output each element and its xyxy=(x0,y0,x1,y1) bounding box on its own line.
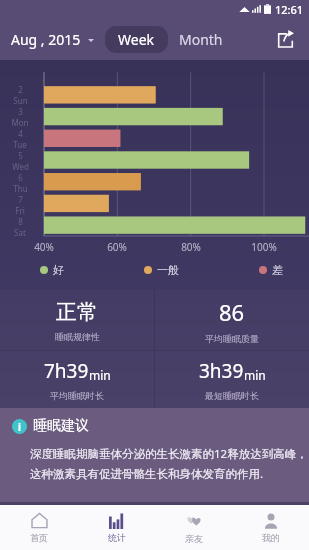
staticText: 最短睡眠时长 xyxy=(205,390,259,401)
button[interactable]: 我的 xyxy=(232,505,309,550)
staticText: 8 xyxy=(18,216,23,227)
staticText: 亲友 xyxy=(185,533,203,544)
staticText: 5 xyxy=(18,150,23,161)
button[interactable]: 正常 xyxy=(0,290,154,350)
button[interactable]: Aug , 2015 xyxy=(11,25,94,54)
staticText: 6 xyxy=(18,172,23,183)
button[interactable]: 首页 xyxy=(0,505,78,550)
button[interactable]: 7h39 xyxy=(0,351,154,408)
staticText: 平均睡眠时长 xyxy=(50,390,104,401)
button[interactable]: 一般 xyxy=(144,263,179,277)
button[interactable]: Week xyxy=(105,26,168,53)
staticText: Week xyxy=(118,30,155,49)
staticText: 40% xyxy=(34,240,54,254)
staticText: 80% xyxy=(181,240,201,254)
staticText: 差 xyxy=(272,263,283,277)
staticText: 3h39 xyxy=(199,358,244,384)
staticText: 睡眠规律性 xyxy=(55,331,100,342)
staticText: 统计 xyxy=(108,532,126,543)
staticText: 2 xyxy=(18,84,23,95)
staticText: 睡眠建议 xyxy=(33,417,89,435)
button[interactable]: Month xyxy=(175,26,227,53)
staticText: 12:61 xyxy=(275,2,304,17)
staticText: min xyxy=(244,367,266,383)
staticText: 正常 xyxy=(56,299,98,325)
staticText: 3 xyxy=(18,106,23,117)
staticText: 一般 xyxy=(157,263,179,277)
staticText: Mon xyxy=(11,117,29,128)
staticText: 86 xyxy=(219,297,245,327)
staticText: min xyxy=(89,367,111,383)
staticText: Fri xyxy=(15,205,25,216)
staticText: 7 xyxy=(18,194,23,205)
staticText: i xyxy=(18,420,21,434)
staticText: 首页 xyxy=(30,532,48,543)
staticText: Thu xyxy=(13,183,28,194)
button[interactable]: 3h39 xyxy=(155,351,309,408)
staticText: 深度睡眠期脑垂体分泌的生长激素的12释放达到高峰，这种激素具有促进骨骼生长和身体… xyxy=(30,446,309,481)
button[interactable]: 好 xyxy=(40,263,64,277)
staticText: 我的 xyxy=(262,532,280,543)
staticText: 4 xyxy=(18,128,23,139)
staticText: Sat xyxy=(14,227,26,238)
staticText: 7h39 xyxy=(44,358,89,384)
button[interactable]: Share xyxy=(269,23,301,55)
button[interactable]: i xyxy=(12,417,89,435)
button[interactable]: 86 xyxy=(155,290,309,350)
staticText: Tue xyxy=(13,139,27,150)
staticText: Aug , 2015 xyxy=(11,30,81,49)
staticText: Month xyxy=(179,30,223,49)
staticText: 平均睡眠质量 xyxy=(205,333,259,344)
staticText: Sun xyxy=(13,95,28,106)
button[interactable]: 亲友 xyxy=(155,505,232,550)
button[interactable]: 差 xyxy=(259,263,283,277)
staticText: 好 xyxy=(53,263,64,277)
staticText: 100% xyxy=(251,240,277,254)
staticText: Wed xyxy=(12,161,29,172)
button[interactable]: 统计 xyxy=(78,505,155,550)
staticText: 60% xyxy=(107,240,127,254)
